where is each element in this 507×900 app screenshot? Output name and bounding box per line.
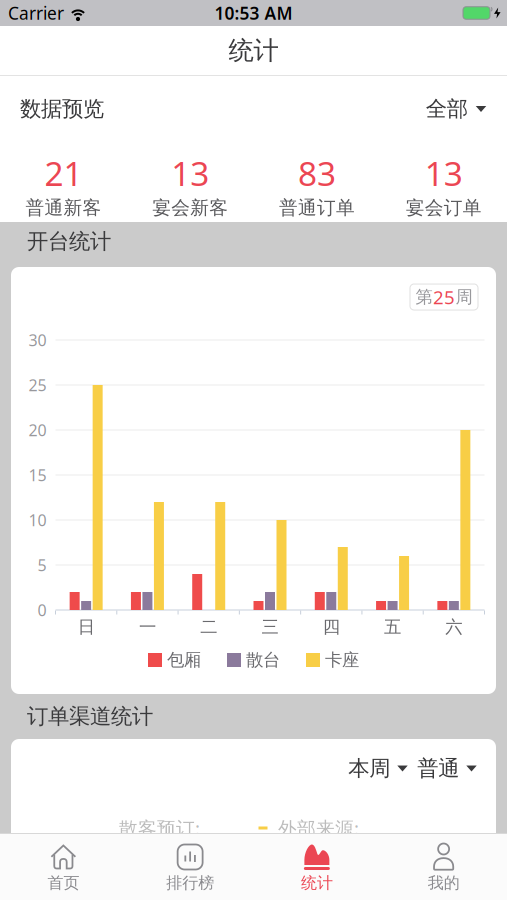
staticText: 宴会订单 bbox=[406, 196, 482, 219]
button[interactable]: 首页 bbox=[0, 834, 127, 900]
staticText: 统计 bbox=[228, 35, 278, 66]
staticText: 散台 bbox=[246, 649, 280, 671]
staticText: 包厢 bbox=[167, 649, 201, 671]
staticText: 开台统计 bbox=[27, 228, 111, 255]
staticText: 排行榜 bbox=[166, 873, 214, 893]
staticText: 30 bbox=[28, 329, 46, 351]
staticText: 我的 bbox=[428, 873, 460, 893]
staticText: 订单渠道统计 bbox=[27, 703, 153, 730]
staticText: 15 bbox=[28, 464, 46, 486]
button[interactable]: 普通 bbox=[417, 755, 477, 782]
staticText: 散客预订: bbox=[119, 816, 200, 840]
staticText: 数据预览 bbox=[20, 96, 104, 122]
button[interactable]: 统计 bbox=[253, 834, 380, 900]
staticText: 普通订单 bbox=[279, 196, 355, 219]
staticText: 五 bbox=[384, 616, 401, 638]
staticText: 5 bbox=[37, 554, 46, 576]
staticText: 10:53 AM bbox=[214, 1, 292, 24]
staticText: 83 bbox=[298, 151, 336, 195]
staticText: 13 bbox=[171, 151, 209, 195]
staticText: 二 bbox=[200, 616, 217, 638]
staticText: 13 bbox=[425, 151, 463, 195]
staticText: 10 bbox=[28, 509, 46, 531]
staticText: 三 bbox=[261, 616, 278, 638]
staticText: 25 bbox=[433, 285, 455, 309]
staticText: 卡座 bbox=[325, 649, 359, 671]
staticText: 首页 bbox=[47, 873, 79, 893]
staticText: 普通 bbox=[417, 755, 459, 782]
staticText: 普通新客 bbox=[25, 196, 101, 219]
staticText: 20 bbox=[28, 419, 46, 441]
staticText: 外部来源: bbox=[278, 816, 359, 840]
staticText: 统计 bbox=[301, 873, 333, 893]
button[interactable]: 全部 bbox=[426, 96, 486, 122]
staticText: 四 bbox=[323, 616, 340, 638]
staticText: Carrier bbox=[8, 1, 64, 24]
staticText: 日 bbox=[78, 616, 95, 638]
staticText: 周 bbox=[455, 286, 472, 308]
staticText: 0 bbox=[37, 599, 46, 621]
staticText: 21 bbox=[44, 151, 82, 195]
staticText: 第 bbox=[415, 286, 432, 308]
staticText: 25 bbox=[28, 374, 46, 396]
button[interactable]: 本周 bbox=[348, 755, 408, 782]
button[interactable]: 排行榜 bbox=[127, 834, 254, 900]
staticText: 全部 bbox=[426, 96, 468, 122]
button[interactable]: 我的 bbox=[380, 834, 507, 900]
staticText: 本周 bbox=[348, 755, 390, 782]
staticText: 六 bbox=[445, 616, 462, 638]
staticText: 宴会新客 bbox=[152, 196, 228, 219]
staticText: 一 bbox=[139, 616, 156, 638]
